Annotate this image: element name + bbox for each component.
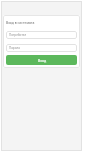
staticText: Вход в системата	[6, 20, 35, 25]
staticText: Парола	[9, 46, 20, 50]
button[interactable]: Вход	[6, 55, 77, 65]
button[interactable]: Потребител	[6, 31, 77, 39]
staticText: Потребител	[9, 33, 27, 37]
button[interactable]: Парола	[6, 44, 77, 52]
staticText: Вход	[38, 58, 46, 63]
